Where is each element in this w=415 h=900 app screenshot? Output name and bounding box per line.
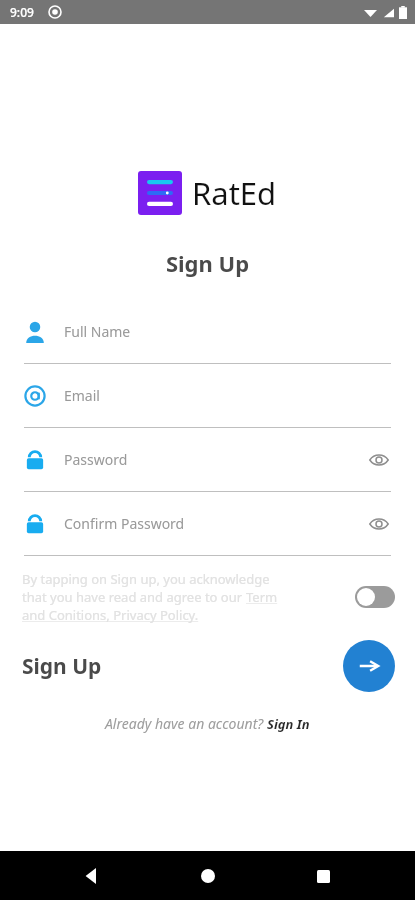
staticText: Email (64, 386, 391, 405)
button[interactable]: Sign Up (22, 652, 102, 681)
button[interactable]: Home (184, 852, 232, 900)
staticText: Password (64, 450, 367, 469)
button[interactable]: Submit sign up (343, 640, 395, 692)
button[interactable]: Show password (367, 512, 391, 536)
staticText: Full Name (64, 322, 391, 341)
button[interactable]: Term (246, 588, 278, 606)
button[interactable]: Confirm Password (0, 492, 415, 556)
button[interactable]: Accept terms toggle (355, 586, 395, 608)
staticText: Already have an account? (105, 714, 267, 733)
button[interactable]: Full Name (0, 300, 415, 364)
staticText: RatEd (192, 172, 277, 214)
button[interactable]: Show password (367, 448, 391, 472)
button[interactable]: Sign In (267, 715, 310, 733)
staticText: Sign Up (0, 248, 415, 278)
button[interactable]: and Conitions, Privacy Policy. (22, 606, 199, 624)
staticText: By tapping on Sign up, you acknowledge (22, 570, 270, 588)
staticText: 9:09 (10, 4, 34, 20)
staticText: Confirm Password (64, 514, 367, 533)
button[interactable]: Email (0, 364, 415, 428)
staticText: that you have read and agree to our (22, 588, 246, 606)
button[interactable]: Password (0, 428, 415, 492)
button[interactable]: Recents (299, 852, 347, 900)
button[interactable]: Back (68, 852, 116, 900)
